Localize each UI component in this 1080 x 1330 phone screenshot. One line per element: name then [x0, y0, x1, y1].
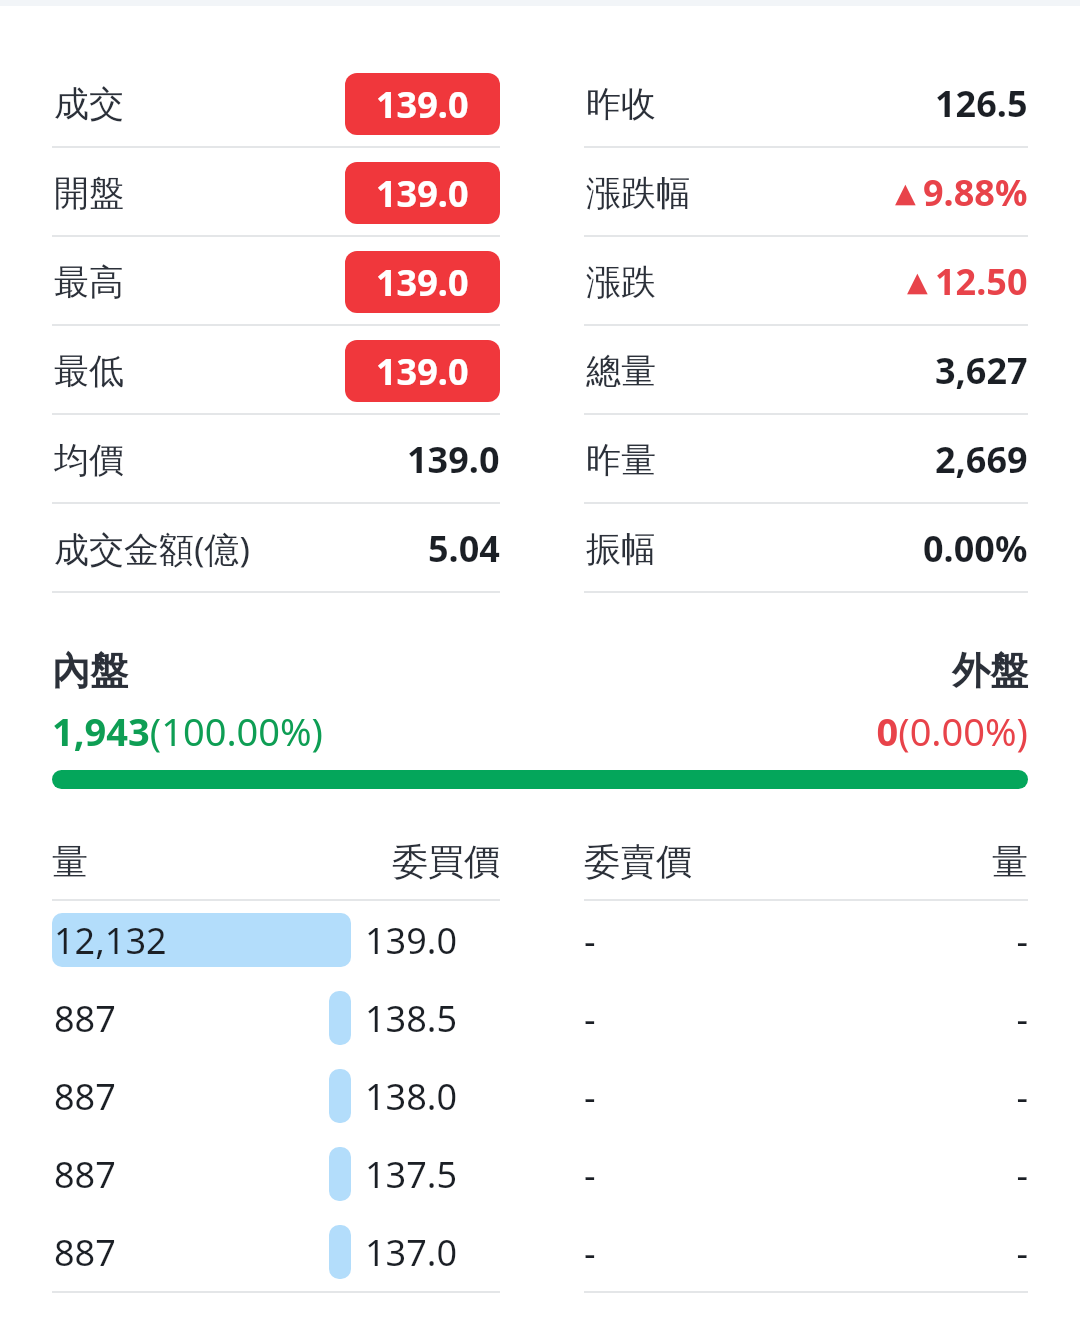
staticText: 12,132	[54, 916, 167, 965]
staticText: 開盤	[54, 171, 345, 215]
staticText: 成交	[54, 82, 345, 126]
staticText: 均價	[54, 438, 407, 482]
staticText: 最低	[54, 349, 345, 393]
staticText: 139.0	[376, 80, 469, 129]
button[interactable]: -	[584, 901, 1028, 979]
staticText: 最高	[54, 260, 345, 304]
staticText: 成交金額(億)	[54, 525, 428, 573]
staticText: 139.0	[407, 435, 500, 484]
staticText: 137.5	[365, 1150, 458, 1199]
button[interactable]: 最高	[52, 237, 500, 326]
staticText: 委賣價	[584, 839, 992, 884]
button[interactable]: 成交	[52, 59, 500, 148]
button[interactable]: 振幅	[584, 504, 1028, 593]
button[interactable]: 887	[52, 1213, 500, 1291]
staticText: ▲	[895, 177, 916, 208]
staticText: 昨量	[586, 438, 935, 482]
staticText: 139.0	[376, 169, 469, 218]
button[interactable]: 887	[52, 1135, 500, 1213]
button[interactable]: -	[584, 1135, 1028, 1213]
button[interactable]: 漲跌	[584, 237, 1028, 326]
button[interactable]: 887	[52, 979, 500, 1057]
staticText: 昨收	[586, 82, 935, 126]
staticText: 126.5	[935, 79, 1028, 128]
staticText: 9.88%	[923, 168, 1028, 217]
staticText: -	[1016, 1150, 1028, 1199]
staticText: 139.0	[376, 347, 469, 396]
button[interactable]: 開盤	[52, 148, 500, 237]
staticText: 138.5	[365, 994, 458, 1043]
staticText: 0(0.00%)	[876, 705, 1028, 757]
button[interactable]: -	[584, 1213, 1028, 1291]
staticText: 887	[54, 1228, 116, 1277]
staticText: 139.0	[376, 258, 469, 307]
button[interactable]: 總量	[584, 326, 1028, 415]
button[interactable]: 漲跌幅	[584, 148, 1028, 237]
button[interactable]: 昨收	[584, 59, 1028, 148]
staticText: -	[584, 994, 1016, 1043]
staticText: 漲跌幅	[586, 171, 895, 215]
staticText: 137.0	[365, 1228, 458, 1277]
staticText: -	[1016, 1072, 1028, 1121]
staticText: 量	[992, 839, 1028, 884]
staticText: -	[1016, 916, 1028, 965]
staticText: -	[1016, 1228, 1028, 1277]
staticText: 1,943(100.00%)	[52, 705, 324, 757]
staticText: -	[584, 916, 1016, 965]
staticText: 139.0	[365, 916, 458, 965]
staticText: 887	[54, 994, 116, 1043]
staticText: -	[584, 1150, 1016, 1199]
staticText: 5.04	[428, 524, 500, 573]
staticText: 外盤	[952, 647, 1028, 695]
staticText: 內盤	[52, 647, 952, 695]
staticText: 887	[54, 1150, 116, 1199]
button[interactable]: -	[584, 979, 1028, 1057]
button[interactable]: 成交金額(億)	[52, 504, 500, 593]
staticText: 2,669	[935, 435, 1028, 484]
button[interactable]: 887	[52, 1057, 500, 1135]
staticText: 887	[54, 1072, 116, 1121]
staticText: -	[1016, 994, 1028, 1043]
button[interactable]: -	[584, 1057, 1028, 1135]
staticText: 漲跌	[586, 260, 907, 304]
staticText: 0.00%	[923, 524, 1028, 573]
button[interactable]: 12,132	[52, 901, 500, 979]
staticText: 3,627	[935, 346, 1028, 395]
staticText: 委買價	[392, 839, 500, 884]
staticText: -	[584, 1072, 1016, 1121]
button[interactable]: 昨量	[584, 415, 1028, 504]
staticText: ▲	[907, 266, 928, 297]
button[interactable]: 最低	[52, 326, 500, 415]
staticText: 12.50	[935, 257, 1028, 306]
staticText: 總量	[586, 349, 935, 393]
staticText: 量	[52, 839, 392, 884]
staticText: 振幅	[586, 527, 923, 571]
button[interactable]: 均價	[52, 415, 500, 504]
staticText: 138.0	[365, 1072, 458, 1121]
staticText: -	[584, 1228, 1016, 1277]
